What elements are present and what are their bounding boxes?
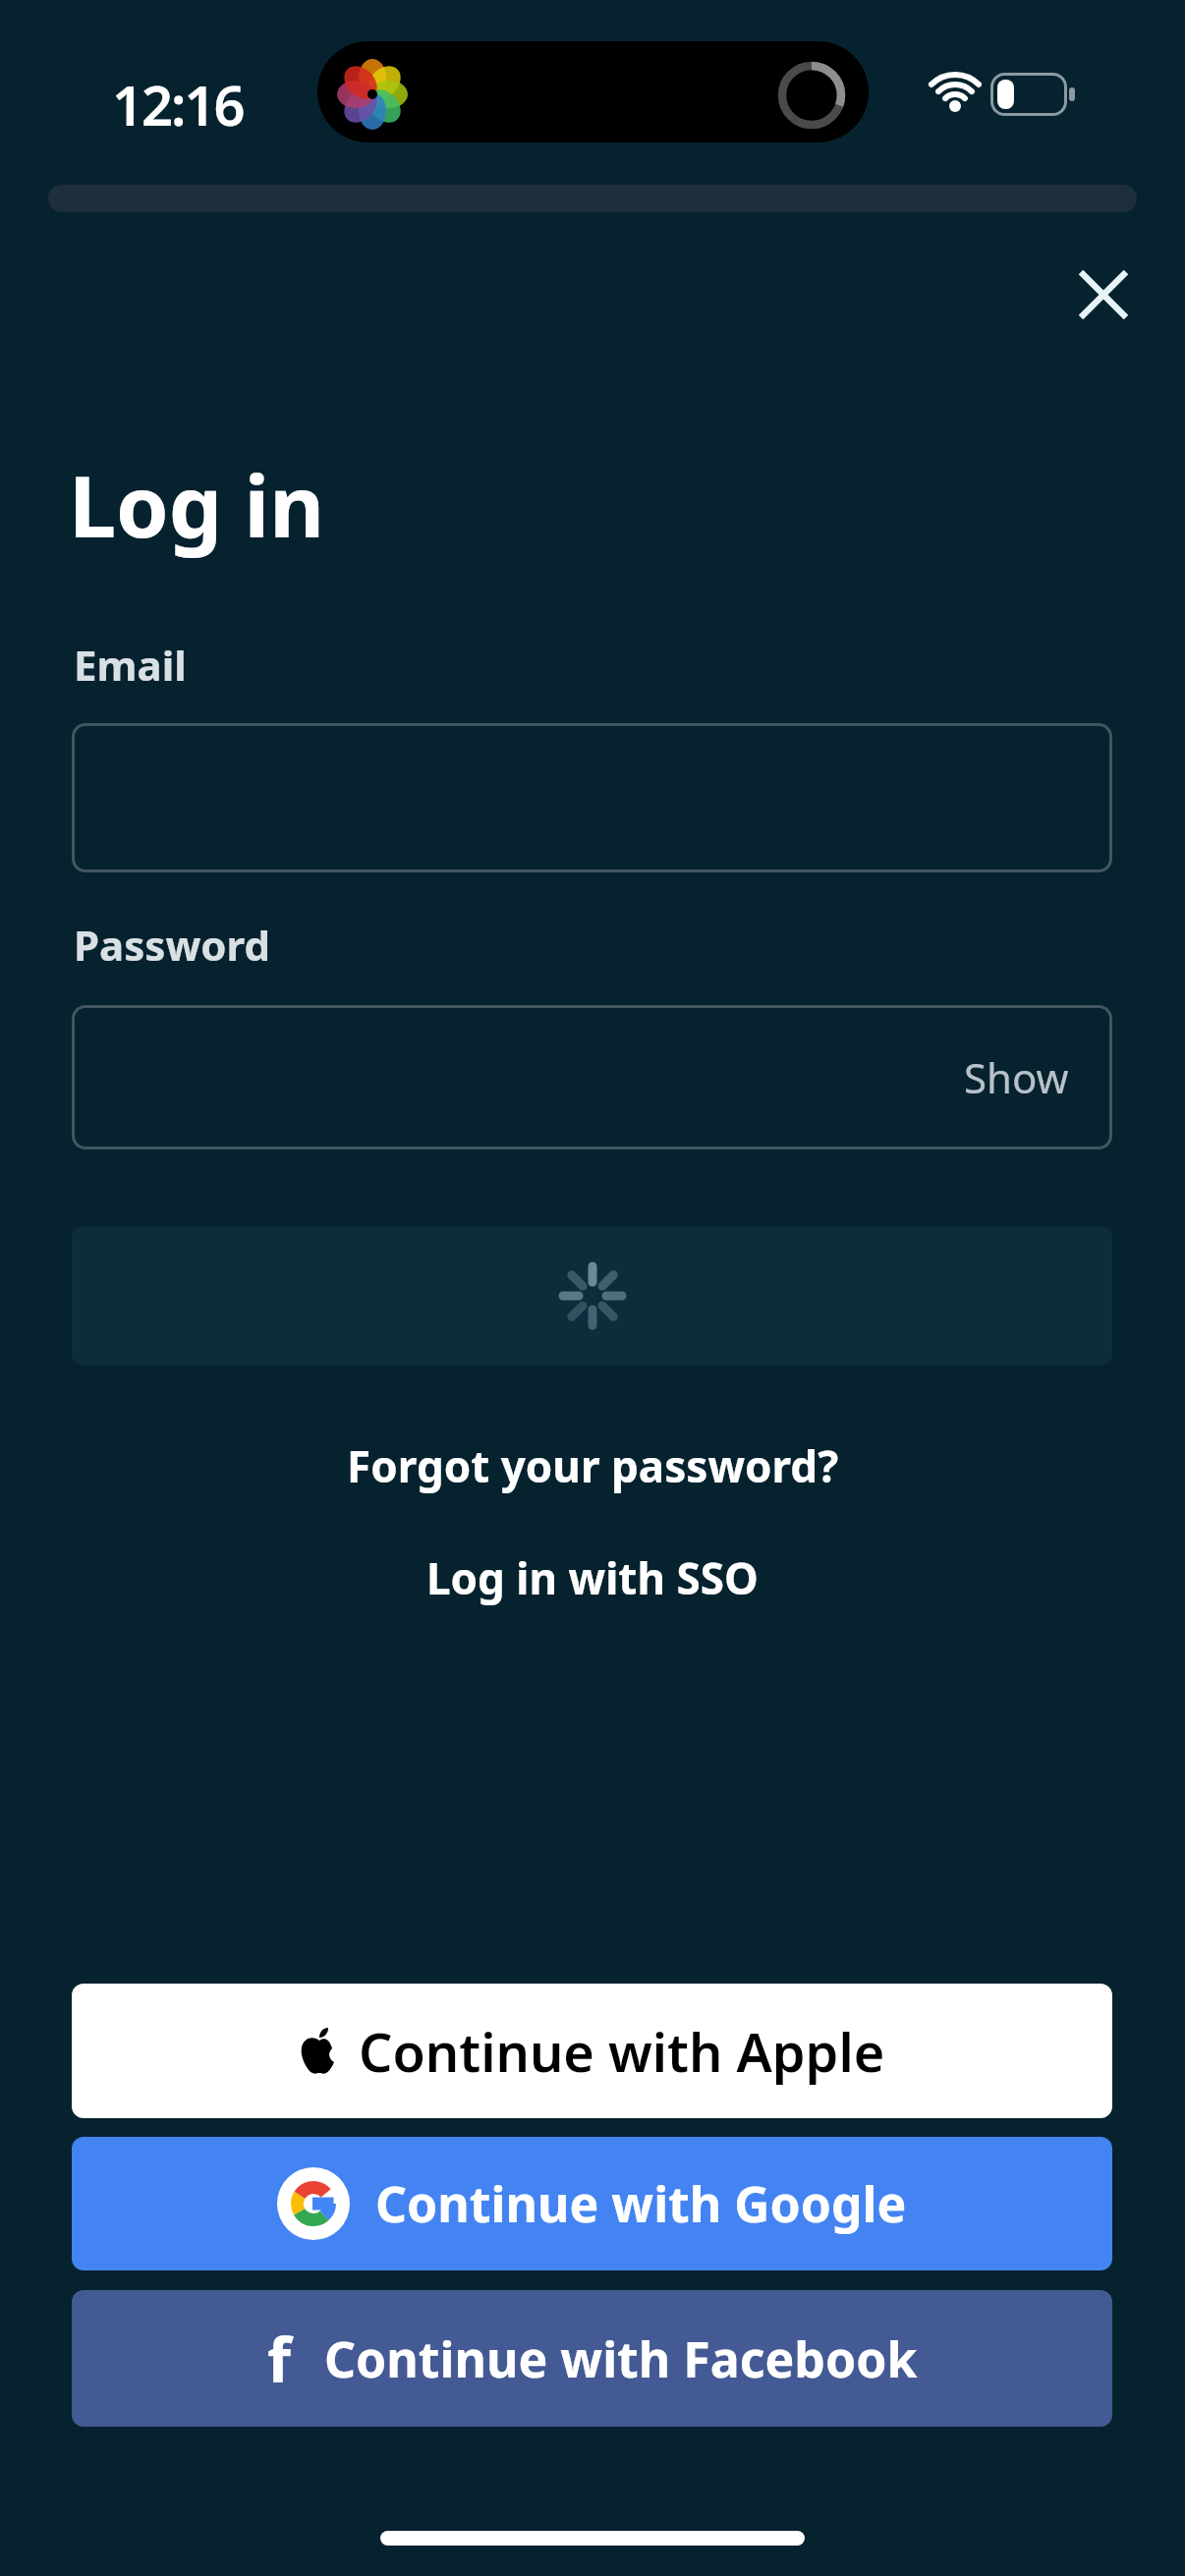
staticText: f bbox=[267, 2318, 291, 2400]
staticText: Log in bbox=[69, 447, 325, 562]
button[interactable] bbox=[72, 723, 1112, 872]
staticText: Password bbox=[74, 917, 271, 973]
staticText: Log in with SSO bbox=[426, 1548, 759, 1607]
button[interactable] bbox=[72, 1226, 1112, 1366]
staticText: Continue with Google bbox=[375, 2170, 907, 2237]
button[interactable]: Show bbox=[72, 1005, 1112, 1149]
button[interactable]: Log in with SSO bbox=[426, 1548, 759, 1607]
staticText: Email bbox=[74, 637, 187, 693]
staticText: Continue with Apple bbox=[359, 2015, 885, 2088]
button[interactable] bbox=[1056, 248, 1151, 342]
staticText: Continue with Facebook bbox=[324, 2325, 918, 2392]
staticText: Forgot your password? bbox=[347, 1436, 839, 1495]
button[interactable]: Continue with Google bbox=[72, 2137, 1112, 2270]
button[interactable]: Show bbox=[964, 1049, 1069, 1105]
staticText: Show bbox=[964, 1049, 1069, 1105]
button[interactable]: Continue with Apple bbox=[72, 1984, 1112, 2118]
button[interactable]: f bbox=[72, 2290, 1112, 2427]
button[interactable]: Forgot your password? bbox=[347, 1436, 839, 1495]
staticText: 12:16 bbox=[112, 67, 244, 141]
